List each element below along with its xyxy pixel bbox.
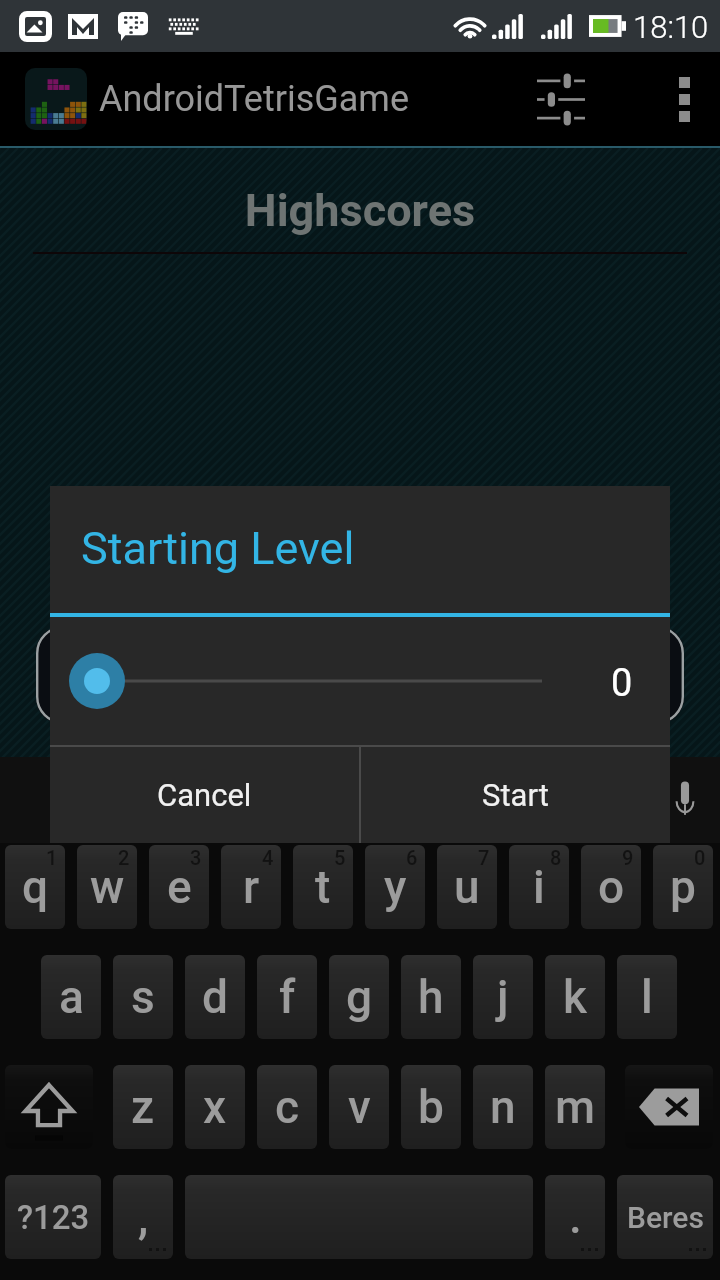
staticText: k <box>563 970 588 1024</box>
staticText: h <box>418 970 444 1024</box>
button[interactable]: w <box>77 845 137 929</box>
button[interactable]: r <box>221 845 281 929</box>
staticText: s <box>131 970 155 1024</box>
button[interactable]: p <box>653 845 713 929</box>
button[interactable]: v <box>329 1065 389 1149</box>
button[interactable]: u <box>437 845 497 929</box>
button[interactable]: Beres <box>617 1175 713 1259</box>
button[interactable]: , <box>113 1175 173 1259</box>
button[interactable]: o <box>581 845 641 929</box>
staticText: r <box>243 860 260 914</box>
staticText: o <box>598 860 625 914</box>
staticText: 9 <box>622 846 634 869</box>
staticText: t <box>315 860 331 914</box>
staticText: e <box>167 860 192 914</box>
staticText: 3 <box>190 846 202 869</box>
staticText: y <box>384 860 407 914</box>
staticText: AndroidTetrisGame <box>99 78 410 120</box>
button[interactable]: f <box>257 955 317 1039</box>
staticText: m <box>555 1080 596 1134</box>
button[interactable]: Settings <box>514 52 608 146</box>
button[interactable]: Start <box>361 747 670 843</box>
button[interactable]: k <box>545 955 605 1039</box>
staticText: 5 <box>334 846 346 869</box>
button[interactable]: c <box>257 1065 317 1149</box>
button[interactable]: j <box>473 955 533 1039</box>
button[interactable]: z <box>113 1065 173 1149</box>
button[interactable]: More options <box>648 52 720 146</box>
button[interactable]: . <box>545 1175 605 1259</box>
button[interactable]: h <box>401 955 461 1039</box>
button[interactable]: d <box>185 955 245 1039</box>
button[interactable]: ?123 <box>5 1175 101 1259</box>
button[interactable]: i <box>509 845 569 929</box>
staticText: b <box>418 1080 444 1134</box>
staticText: 4 <box>262 846 274 869</box>
staticText: q <box>22 860 49 914</box>
staticText: g <box>346 970 373 1024</box>
button[interactable]: Space <box>185 1175 533 1259</box>
staticText: n <box>490 1080 516 1134</box>
staticText: Cancel <box>157 777 252 813</box>
staticText: 2 <box>118 846 130 869</box>
button[interactable]: x <box>185 1065 245 1149</box>
staticText: 18:10 <box>633 9 709 45</box>
button[interactable]: a <box>41 955 101 1039</box>
button[interactable]: e <box>149 845 209 929</box>
staticText: x <box>203 1080 227 1134</box>
button[interactable]: s <box>113 955 173 1039</box>
staticText: 0 <box>611 661 633 706</box>
button[interactable]: q <box>5 845 65 929</box>
button[interactable]: l <box>617 955 677 1039</box>
button[interactable]: Backspace <box>625 1065 713 1149</box>
staticText: c <box>275 1080 300 1134</box>
staticText: z <box>131 1080 155 1134</box>
staticText: d <box>202 970 228 1024</box>
button[interactable]: Cancel <box>50 747 359 843</box>
staticText: 6 <box>406 846 418 869</box>
staticText: i <box>533 860 545 914</box>
staticText: v <box>348 1080 371 1134</box>
button[interactable]: g <box>329 955 389 1039</box>
button[interactable]: Shift <box>5 1065 93 1149</box>
staticText: Beres <box>627 1200 704 1235</box>
staticText: a <box>59 970 84 1024</box>
button[interactable]: b <box>401 1065 461 1149</box>
button[interactable]: y <box>365 845 425 929</box>
staticText: Highscores <box>0 184 720 237</box>
staticText: ?123 <box>17 1198 90 1237</box>
staticText: 7 <box>478 846 490 869</box>
staticText: 1 <box>46 846 58 869</box>
staticText: Starting Level <box>81 522 355 575</box>
staticText: u <box>454 860 480 914</box>
staticText: p <box>670 860 696 914</box>
button[interactable]: m <box>545 1065 605 1149</box>
staticText: 8 <box>550 846 562 869</box>
staticText: l <box>641 970 653 1024</box>
staticText: , <box>138 1190 149 1244</box>
staticText: Start <box>482 777 549 813</box>
staticText: . <box>569 1190 582 1244</box>
staticText: f <box>279 970 296 1024</box>
button[interactable]: n <box>473 1065 533 1149</box>
staticText: j <box>497 970 509 1024</box>
button[interactable]: t <box>293 845 353 929</box>
staticText: 0 <box>694 846 706 869</box>
staticText: w <box>90 860 125 914</box>
